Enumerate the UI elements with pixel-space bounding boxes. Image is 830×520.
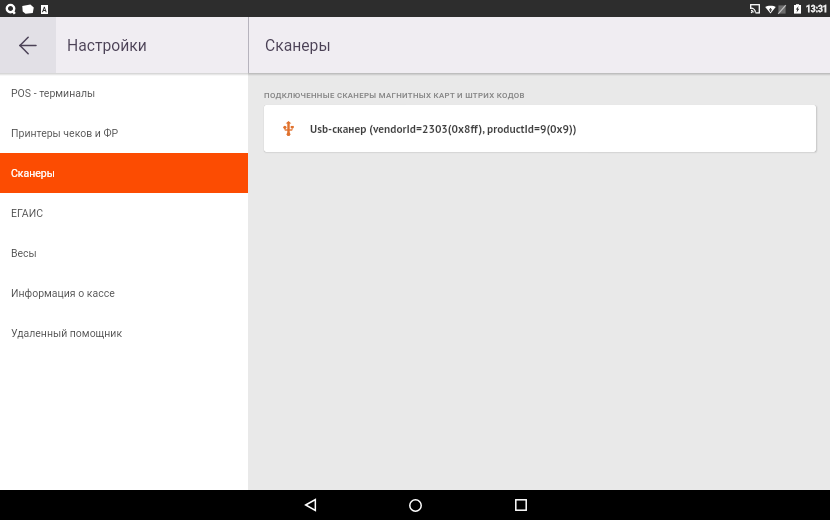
button[interactable]: Usb-сканер (vendorId=2303(0x8ff), produc… xyxy=(264,105,816,152)
button[interactable]: ЕГАИС xyxy=(0,193,248,233)
staticText: Информация о кассе xyxy=(11,287,115,299)
button[interactable]: Сканеры xyxy=(0,153,248,193)
button[interactable]: Home xyxy=(363,490,468,520)
staticText: POS - терминалы xyxy=(11,87,96,99)
staticText: Принтеры чеков и ФР xyxy=(11,127,119,139)
button[interactable]: Back xyxy=(258,490,363,520)
staticText: Удаленный помощник xyxy=(11,327,123,339)
button[interactable]: Удаленный помощник xyxy=(0,313,248,353)
staticText: A xyxy=(42,6,47,14)
button[interactable]: Back xyxy=(0,17,56,73)
staticText: Весы xyxy=(11,247,37,259)
staticText: Сканеры xyxy=(11,167,55,179)
staticText: ЕГАИС xyxy=(11,207,43,219)
button[interactable]: Recent apps xyxy=(468,490,573,520)
staticText: ПОДКЛЮЧЕННЫЕ СКАНЕРЫ МАГНИТНЫХ КАРТ И ШТ… xyxy=(264,91,525,100)
button[interactable]: Информация о кассе xyxy=(0,273,248,313)
button[interactable]: Принтеры чеков и ФР xyxy=(0,113,248,153)
button[interactable]: POS - терминалы xyxy=(0,73,248,113)
staticText: Настройки xyxy=(67,36,147,54)
staticText: Сканеры xyxy=(265,36,331,54)
button[interactable]: Весы xyxy=(0,233,248,273)
staticText: Usb-сканер (vendorId=2303(0x8ff), produc… xyxy=(310,121,577,136)
staticText: 13:31 xyxy=(806,4,828,14)
